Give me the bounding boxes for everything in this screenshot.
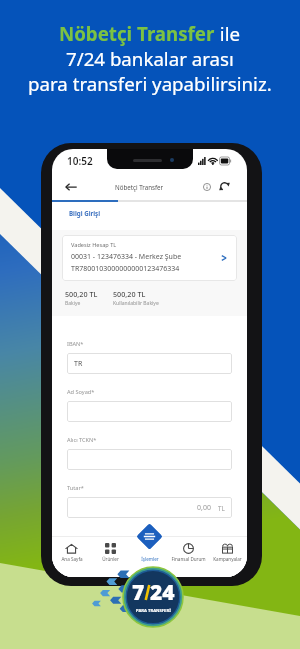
staticText: Bakiye <box>65 300 81 307</box>
staticText: Bilgi Girişi <box>69 209 101 217</box>
staticText: TR7800103000000000123476334 <box>71 264 180 274</box>
staticText: 7/24 bankalar arası <box>66 46 234 71</box>
staticText: TR <box>74 359 83 369</box>
staticText: Nöbetçi Transfer <box>115 183 164 191</box>
staticText: 00031 - 123476334 - Merkez Şube <box>71 252 182 262</box>
staticText: Alıcı TCKN* <box>67 436 97 444</box>
button[interactable] <box>67 449 232 470</box>
staticText: 10:52 <box>67 154 93 168</box>
button[interactable]: Transaction history <box>219 181 230 192</box>
button[interactable]: 0,00 <box>67 497 232 518</box>
button[interactable]: Ürünler <box>91 536 130 577</box>
staticText: Ana Sayfa <box>61 556 83 562</box>
button[interactable]: İşlemler <box>136 523 163 550</box>
staticText: 0,00 <box>197 503 211 513</box>
staticText: 7 <box>132 578 145 607</box>
staticText: Ad Soyad* <box>67 388 95 396</box>
staticText: 24 <box>150 578 175 607</box>
staticText: 500,20 TL <box>65 289 98 299</box>
staticText: Kampanyalar <box>213 556 242 562</box>
staticText: Ürünler <box>102 556 119 562</box>
staticText: para transferi yapabilirsiniz. <box>28 71 272 96</box>
button[interactable]: İşlemler <box>130 536 169 577</box>
button[interactable]: Finansal Durum <box>169 536 208 577</box>
button[interactable]: TR <box>67 353 232 374</box>
button[interactable]: Vadesiz Hesap TL <box>62 235 237 281</box>
button[interactable]: Kampanyalar <box>208 536 247 577</box>
staticText: TL <box>218 504 225 512</box>
button[interactable] <box>67 401 232 422</box>
staticText: Vadesiz Hesap TL <box>71 241 117 249</box>
staticText: Kullanılabilir Bakiye <box>113 300 159 307</box>
staticText: İşlemler <box>141 556 159 562</box>
staticText: 500,20 TL <box>113 289 146 299</box>
button[interactable]: Back <box>65 181 77 193</box>
button[interactable]: Info <box>203 183 211 191</box>
staticText: IBAN* <box>67 340 84 348</box>
staticText: Tutar* <box>67 484 84 492</box>
staticText: Finansal Durum <box>171 556 206 562</box>
button[interactable]: Ana Sayfa <box>52 536 91 577</box>
staticText: Nöbetçi Transfer <box>59 21 215 46</box>
staticText: PARA TRANSFERİ <box>136 608 171 614</box>
staticText: ile <box>215 21 241 46</box>
